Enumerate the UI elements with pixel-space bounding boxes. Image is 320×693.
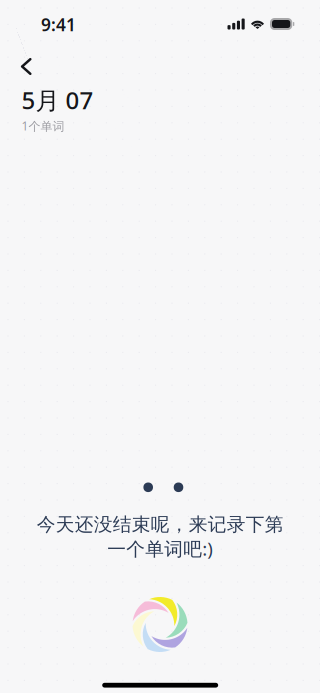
staticText: 1个单词	[21, 118, 64, 134]
staticText: 9:41	[41, 13, 76, 36]
staticText: 今天还没结束呢，来记录下第一个单词吧:)	[36, 513, 283, 561]
staticText: 5月 07	[21, 84, 93, 116]
button[interactable]: Back	[11, 48, 41, 85]
